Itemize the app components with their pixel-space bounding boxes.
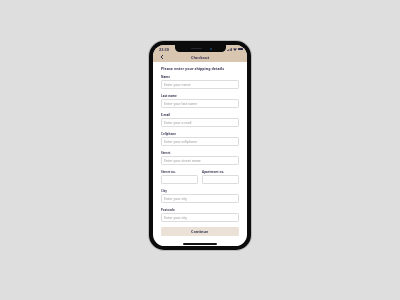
button[interactable]: Continue bbox=[161, 227, 239, 236]
staticText: Apartment no. bbox=[202, 170, 225, 174]
staticText: E-mail bbox=[161, 113, 171, 117]
staticText: Checkout bbox=[191, 55, 210, 60]
button[interactable]: Back bbox=[157, 53, 166, 61]
staticText: Enter your cellphone bbox=[164, 139, 198, 144]
button[interactable]: Enter your city bbox=[161, 194, 239, 203]
button[interactable]: Enter your name bbox=[161, 80, 239, 89]
button[interactable]: Enter your city bbox=[161, 213, 239, 222]
staticText: Continue bbox=[191, 229, 209, 234]
button[interactable] bbox=[161, 175, 198, 184]
button[interactable]: Enter your street name bbox=[161, 156, 239, 165]
staticText: Enter your last name bbox=[164, 101, 198, 106]
button[interactable] bbox=[202, 175, 239, 184]
staticText: Enter your city bbox=[164, 196, 188, 201]
staticText: Postcode bbox=[161, 208, 175, 212]
staticText: Enter your street name bbox=[164, 158, 201, 163]
button[interactable]: Enter your last name bbox=[161, 99, 239, 108]
staticText: Enter your name bbox=[164, 82, 191, 87]
button[interactable]: Enter your e-mail bbox=[161, 118, 239, 127]
staticText: Cellphone bbox=[161, 132, 177, 136]
staticText: 23:30 bbox=[159, 47, 169, 52]
staticText: Last name bbox=[161, 94, 177, 98]
button[interactable]: Enter your cellphone bbox=[161, 137, 239, 146]
staticText: Please enter your shipping details bbox=[161, 66, 225, 71]
staticText: City bbox=[161, 189, 168, 193]
staticText: Enter your city bbox=[164, 215, 188, 220]
staticText: Street no. bbox=[161, 170, 176, 174]
staticText: Name bbox=[161, 75, 171, 79]
staticText: Enter your e-mail bbox=[164, 120, 192, 125]
staticText: Street bbox=[161, 151, 171, 155]
